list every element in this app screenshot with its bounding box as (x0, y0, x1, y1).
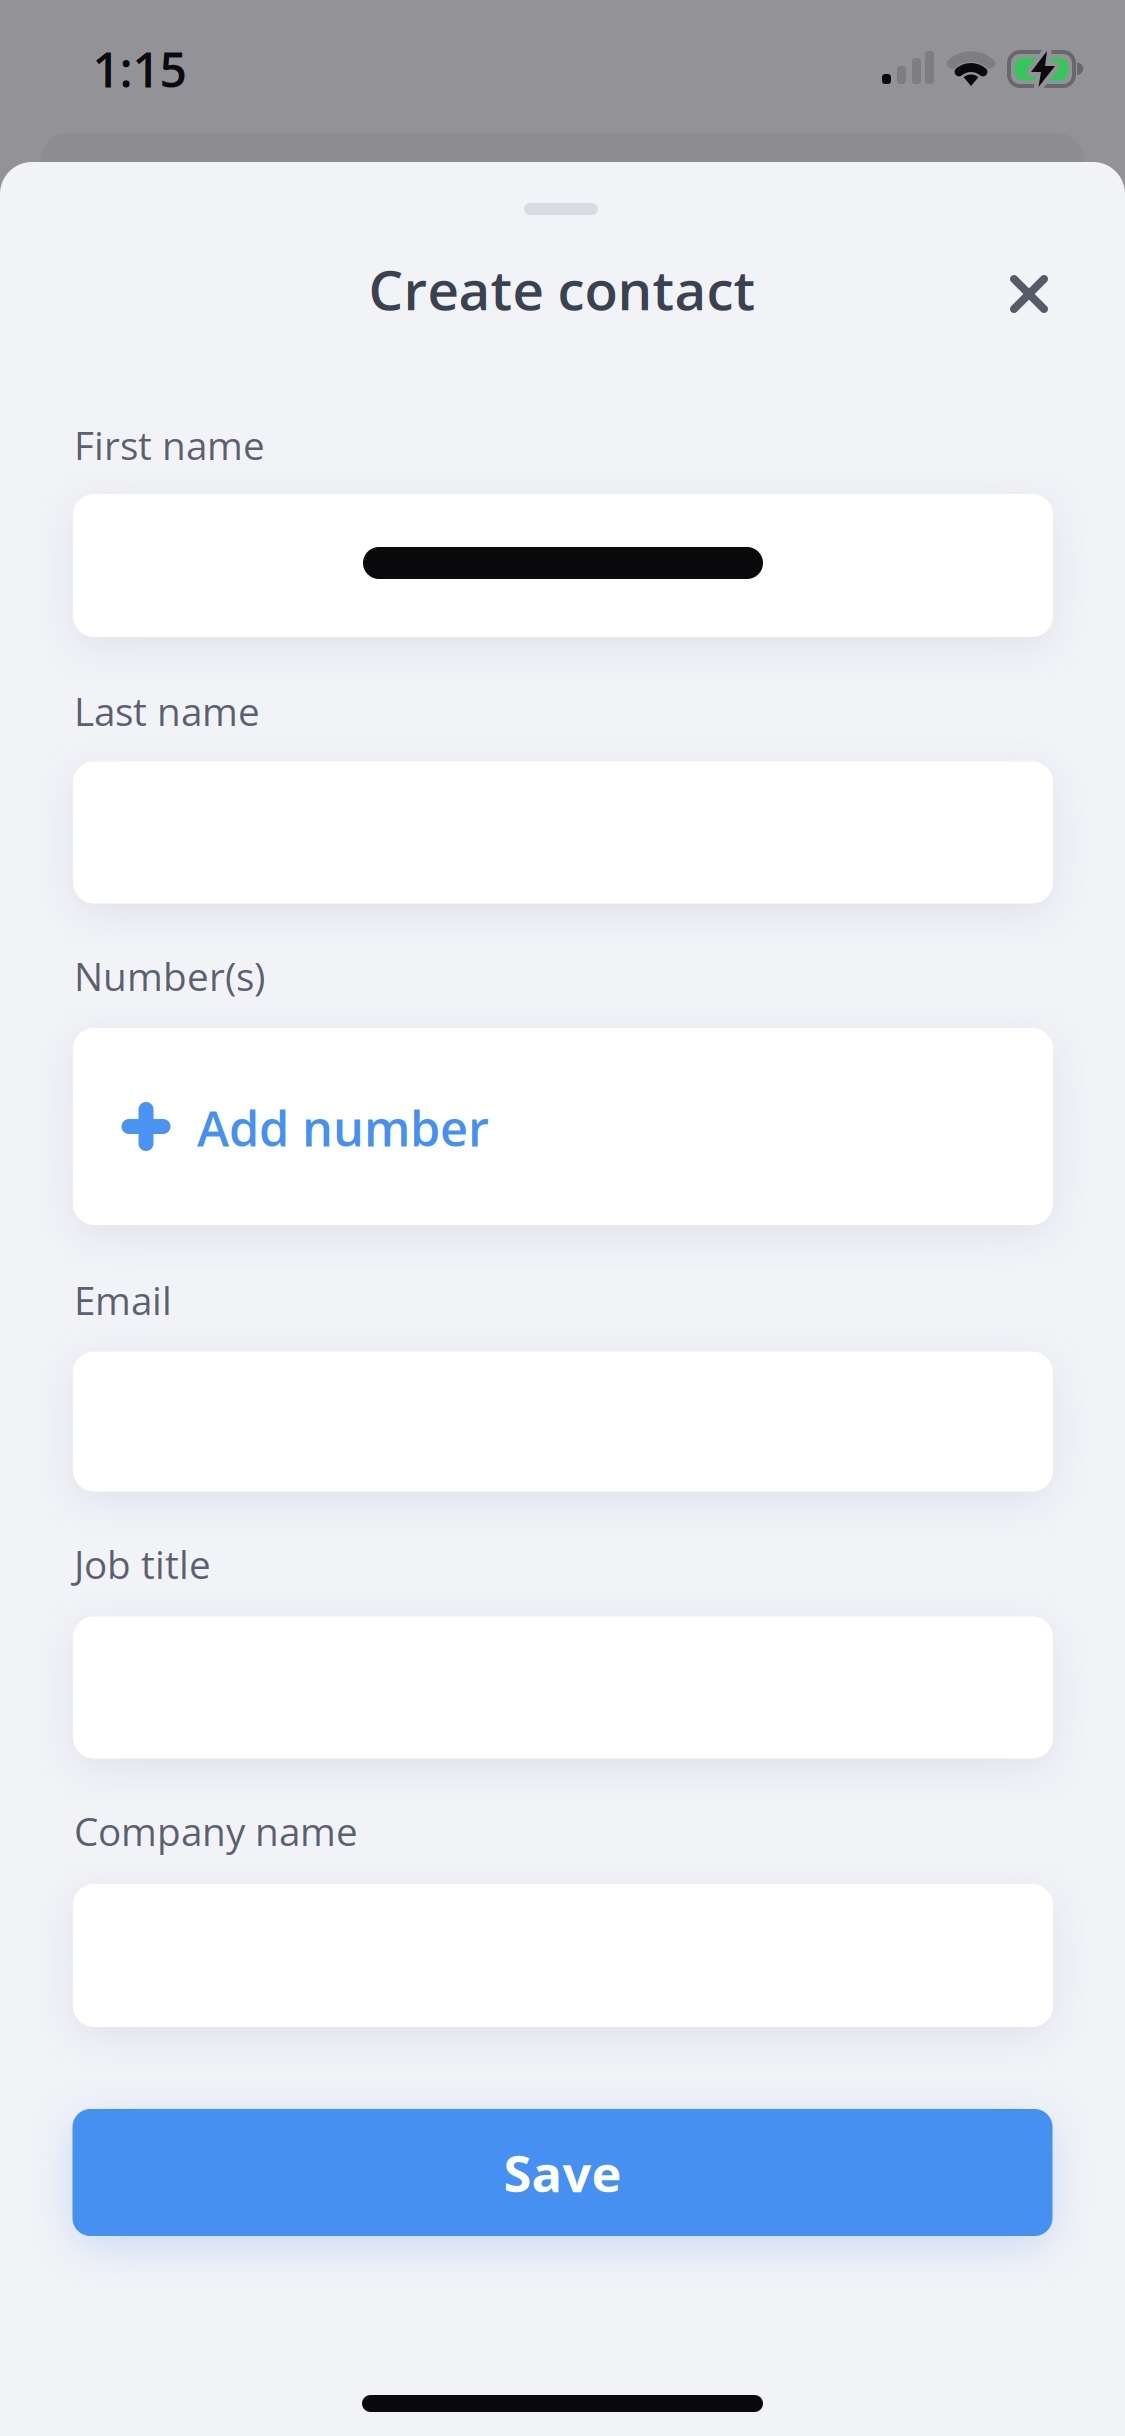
staticText: Add number (197, 1094, 489, 1161)
staticText: Email (74, 1274, 172, 1326)
staticText: 1:15 (92, 36, 186, 102)
staticText: Job title (74, 1538, 211, 1590)
staticText: First name (74, 419, 265, 471)
staticText: Save (503, 2138, 621, 2207)
staticText: Company name (74, 1805, 358, 1857)
staticText: Number(s) (74, 950, 265, 1002)
button[interactable] (984, 249, 1074, 339)
staticText: Create contact (368, 252, 755, 326)
button[interactable]: Add number (73, 1028, 1053, 1225)
button[interactable] (73, 494, 1053, 637)
button[interactable]: Save (72, 2109, 1052, 2236)
staticText: Last name (74, 685, 260, 737)
